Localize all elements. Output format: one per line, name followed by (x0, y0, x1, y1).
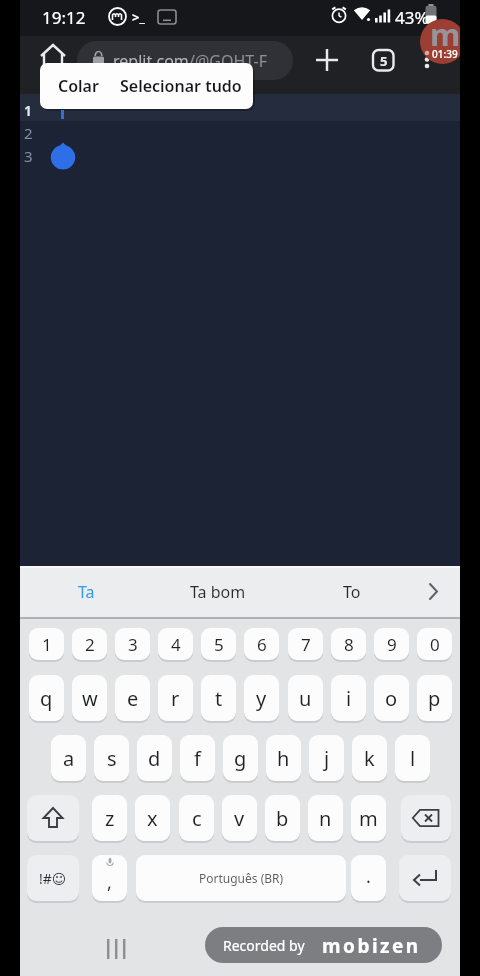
staticText: Colar (58, 75, 99, 97)
staticText: h (277, 745, 290, 772)
staticText: 9 (387, 633, 397, 656)
staticText: 4 (171, 633, 181, 656)
button[interactable]: u (288, 675, 323, 721)
button[interactable]: Português (BR) (136, 855, 346, 901)
button[interactable]: 2 (72, 628, 107, 660)
button[interactable]: d (137, 735, 172, 781)
button[interactable]: 3 (115, 628, 150, 660)
button[interactable]: Ta (36, 566, 136, 617)
button[interactable]: m (420, 19, 465, 64)
staticText: 3 (24, 146, 33, 166)
staticText: 2 (85, 633, 95, 656)
button[interactable]: 6 (244, 628, 279, 660)
staticText: c (192, 805, 202, 832)
button[interactable]: n (308, 795, 343, 841)
staticText: mobizen (322, 933, 421, 959)
button[interactable]: o (374, 675, 409, 721)
button[interactable]: c (179, 795, 214, 841)
button[interactable]: x (135, 795, 170, 841)
button[interactable] (401, 795, 451, 841)
button[interactable] (27, 795, 79, 841)
staticText: b (276, 805, 289, 832)
staticText: j (324, 745, 330, 772)
button[interactable]: q (29, 675, 64, 721)
button[interactable]: p (417, 675, 452, 721)
button[interactable]: j (309, 735, 344, 781)
button[interactable]: b (265, 795, 300, 841)
button[interactable] (399, 855, 451, 901)
staticText: w (82, 685, 98, 712)
button[interactable]: y (244, 675, 279, 721)
button[interactable]: , (92, 855, 127, 901)
staticText: . (366, 864, 371, 889)
staticText: 1 (24, 101, 33, 120)
button[interactable]: z (92, 795, 127, 841)
staticText: 7 (301, 633, 311, 656)
button[interactable]: 5 (363, 45, 403, 85)
button[interactable] (416, 566, 452, 617)
button[interactable]: To (312, 566, 392, 617)
button[interactable]: k (352, 735, 387, 781)
button[interactable]: m (351, 795, 386, 841)
button[interactable]: 5 (201, 628, 236, 660)
button[interactable]: f (180, 735, 215, 781)
button[interactable]: v (222, 795, 257, 841)
staticText: Ta (78, 581, 95, 603)
button[interactable]: . (351, 855, 386, 901)
staticText: d (148, 745, 161, 772)
button[interactable]: h (266, 735, 301, 781)
button[interactable]: r (158, 675, 193, 721)
button[interactable]: s (94, 735, 129, 781)
button[interactable]: g (223, 735, 258, 781)
staticText: n (319, 805, 332, 832)
staticText: q (40, 685, 53, 712)
staticText: u (299, 685, 312, 712)
button[interactable] (308, 41, 346, 79)
staticText: e (127, 685, 139, 712)
staticText: 5 (214, 633, 224, 656)
staticText: Selecionar tudo (120, 75, 242, 97)
staticText: To (343, 581, 361, 603)
button[interactable]: !#☺ (27, 855, 79, 901)
button[interactable]: a (51, 735, 86, 781)
button[interactable]: Ta bom (148, 566, 288, 617)
button[interactable]: Colar (43, 63, 113, 109)
staticText: >_ (132, 8, 145, 26)
button[interactable]: replit.com (77, 41, 293, 80)
button[interactable]: l (395, 735, 430, 781)
button[interactable] (34, 38, 72, 76)
staticText: /@GOHT-F (189, 50, 268, 72)
staticText: a (63, 745, 75, 772)
staticText: p (428, 685, 441, 712)
staticText: replit.com (113, 50, 189, 72)
staticText: , (107, 870, 112, 895)
staticText: i (346, 685, 352, 712)
staticText: t (215, 685, 223, 712)
button[interactable]: e (115, 675, 150, 721)
staticText: 1 (42, 633, 52, 656)
staticText: m (359, 805, 378, 832)
staticText: Recorded by (223, 936, 305, 955)
staticText: 43% (395, 6, 429, 29)
button[interactable]: t (201, 675, 236, 721)
staticText: 0 (430, 633, 440, 656)
button[interactable]: Selecionar tudo (118, 63, 243, 109)
button[interactable]: w (72, 675, 107, 721)
button[interactable] (412, 46, 442, 84)
button[interactable]: 8 (331, 628, 366, 660)
button[interactable]: 0 (417, 628, 452, 660)
staticText: 8 (344, 633, 354, 656)
staticText: !#☺ (39, 869, 67, 888)
button[interactable]: 7 (288, 628, 323, 660)
staticText: x (147, 805, 158, 832)
button[interactable]: 9 (374, 628, 409, 660)
staticText: y (256, 685, 267, 712)
staticText: f (194, 745, 201, 772)
button[interactable]: i (331, 675, 366, 721)
button[interactable]: 1 (29, 628, 64, 660)
staticText: Ta bom (190, 581, 246, 603)
staticText: l (410, 745, 416, 772)
staticText: 3 (128, 633, 138, 656)
button[interactable]: 4 (158, 628, 193, 660)
staticText: k (364, 745, 375, 772)
